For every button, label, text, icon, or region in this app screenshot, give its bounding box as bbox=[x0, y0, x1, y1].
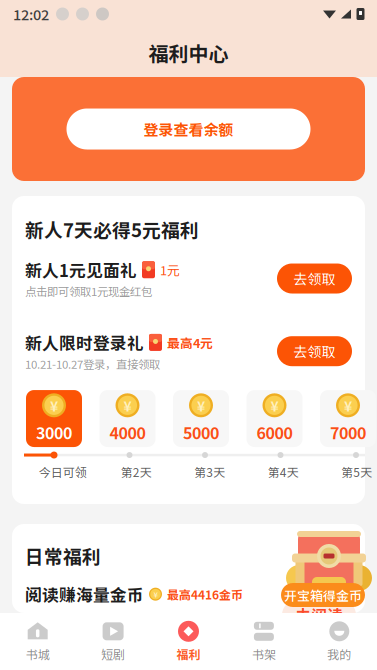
button[interactable]: ¥ bbox=[320, 390, 376, 447]
button[interactable]: 书城 bbox=[0, 613, 75, 670]
button[interactable]: ¥ bbox=[173, 390, 229, 447]
button[interactable]: 去领取 bbox=[277, 263, 352, 293]
staticText: ¥ bbox=[197, 395, 205, 415]
staticText: 点击即可领取1元现金红包 bbox=[25, 283, 152, 299]
staticText: 第2天 bbox=[121, 463, 152, 480]
staticText: 10.21-10.27登录，直接领取 bbox=[25, 355, 160, 372]
staticText: 新人限时登录礼 bbox=[25, 330, 144, 355]
staticText: 最高4416金币 bbox=[167, 585, 243, 603]
staticText: 新人1元见面礼 bbox=[25, 258, 137, 282]
staticText: ¥ bbox=[123, 395, 131, 415]
staticText: 登录查看余额 bbox=[143, 118, 233, 140]
staticText: 去领取 bbox=[293, 341, 335, 361]
staticText: ¥ bbox=[153, 589, 157, 600]
staticText: 书架 bbox=[252, 645, 276, 663]
staticText: ¥ bbox=[270, 395, 278, 415]
button[interactable]: 短剧 bbox=[75, 613, 151, 670]
staticText: 6000 bbox=[256, 421, 292, 444]
staticText: 1元 bbox=[160, 261, 180, 279]
staticText: 开宝箱得金币 bbox=[284, 586, 362, 604]
staticText: 最高4元 bbox=[167, 333, 213, 352]
staticText: 阅读赚海量金币 bbox=[25, 582, 144, 606]
staticText: ¥ bbox=[344, 395, 352, 415]
staticText: 福利 bbox=[176, 645, 200, 663]
staticText: 今日可领 bbox=[39, 463, 87, 480]
staticText: 5000 bbox=[183, 421, 219, 444]
staticText: 日常福利 bbox=[25, 542, 101, 569]
staticText: 福利中心 bbox=[148, 38, 228, 67]
staticText: 3000 bbox=[36, 421, 72, 444]
button[interactable]: 书架 bbox=[226, 613, 302, 670]
staticText: 短剧 bbox=[101, 645, 125, 663]
staticText: 第3天 bbox=[194, 463, 225, 480]
button[interactable]: 登录查看余额 bbox=[66, 108, 310, 149]
button[interactable]: 去领取 bbox=[277, 336, 352, 366]
button[interactable]: ¥ bbox=[99, 390, 155, 447]
staticText: 去领取 bbox=[293, 268, 335, 289]
staticText: 12:02 bbox=[13, 3, 49, 24]
button[interactable]: ¥ bbox=[246, 390, 302, 447]
staticText: 书城 bbox=[26, 645, 50, 663]
staticText: 4000 bbox=[109, 421, 145, 444]
button[interactable]: 我的 bbox=[302, 613, 377, 670]
staticText: 第5天 bbox=[341, 463, 372, 480]
staticText: ¥ bbox=[50, 395, 58, 415]
staticText: 新人7天必得5元福利 bbox=[25, 216, 199, 243]
button[interactable]: 福利 bbox=[151, 613, 226, 670]
button[interactable]: ¥ bbox=[26, 390, 82, 447]
button[interactable]: 开宝箱得金币 bbox=[281, 583, 365, 607]
staticText: 去阅读 bbox=[295, 603, 343, 627]
staticText: 7000 bbox=[330, 421, 366, 444]
staticText: 第4天 bbox=[268, 463, 299, 480]
button[interactable]: 去阅读 bbox=[282, 600, 356, 630]
staticText: 我的 bbox=[327, 645, 351, 663]
